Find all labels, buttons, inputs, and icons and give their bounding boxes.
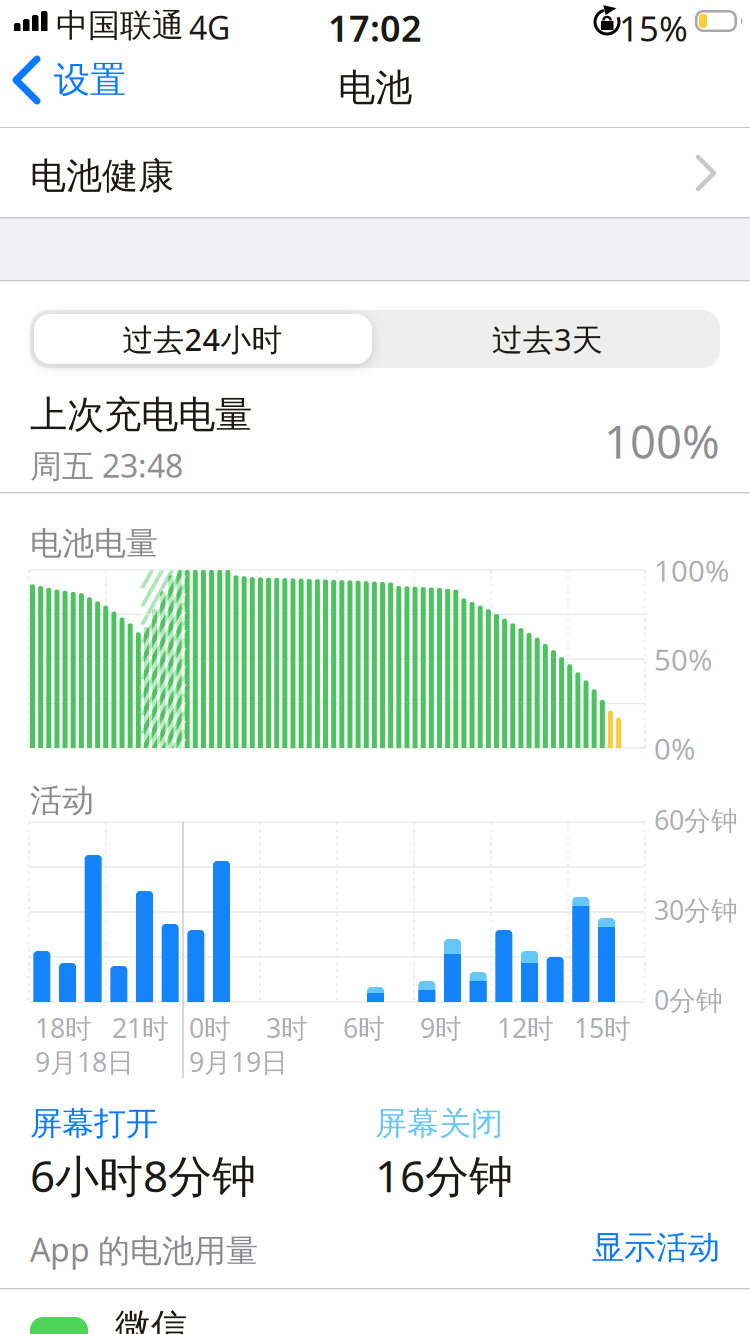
staticText: 18时 (35, 1010, 92, 1045)
staticText: 显示活动 (592, 1228, 720, 1267)
staticText: 6小时8分钟 (30, 1146, 256, 1204)
staticText: 设置 (54, 58, 126, 102)
staticText: 周五 23:48 (30, 444, 183, 486)
staticText: 屏幕打开 (30, 1104, 158, 1143)
button[interactable]: 微信 (0, 1289, 750, 1334)
button[interactable]: 过去24小时 (30, 310, 375, 368)
staticText: 4G (189, 6, 230, 48)
staticText: 30分钟 (654, 892, 738, 927)
staticText: 15时 (574, 1010, 631, 1045)
staticText: 9月18日 (35, 1044, 134, 1079)
staticText: 3时 (266, 1010, 308, 1045)
staticText: 0分钟 (654, 982, 723, 1017)
button[interactable]: 过去3天 (375, 310, 720, 368)
staticText: 60分钟 (654, 802, 738, 837)
button[interactable]: 设置 (0, 47, 126, 113)
staticText: 电池健康 (30, 154, 174, 198)
staticText: 9月19日 (189, 1044, 288, 1079)
staticText: 中国联通 (56, 6, 184, 45)
button[interactable]: 显示活动 (592, 1228, 750, 1267)
staticText: 100% (654, 551, 729, 590)
staticText: 12时 (497, 1010, 554, 1045)
staticText: 活动 (30, 781, 94, 820)
staticText: 21时 (112, 1010, 169, 1045)
staticText: 6时 (343, 1010, 385, 1045)
staticText: 100% (604, 411, 720, 471)
staticText: 0% (654, 729, 695, 768)
button[interactable]: 电池健康 (0, 128, 750, 217)
staticText: 上次充电电量 (30, 392, 252, 438)
staticText: 电池电量 (30, 524, 158, 563)
staticText: 电池 (338, 65, 412, 111)
staticText: 16分钟 (375, 1146, 513, 1204)
staticText: 9时 (420, 1010, 462, 1045)
staticText: 微信 (115, 1305, 187, 1334)
staticText: 0时 (189, 1010, 231, 1045)
staticText: 17:02 (328, 4, 422, 52)
staticText: 50% (654, 640, 712, 679)
staticText: 15% (619, 5, 688, 51)
staticText: 屏幕关闭 (375, 1104, 503, 1143)
staticText: 过去3天 (492, 319, 603, 359)
staticText: App 的电池用量 (30, 1228, 258, 1271)
staticText: 过去24小时 (122, 319, 282, 359)
